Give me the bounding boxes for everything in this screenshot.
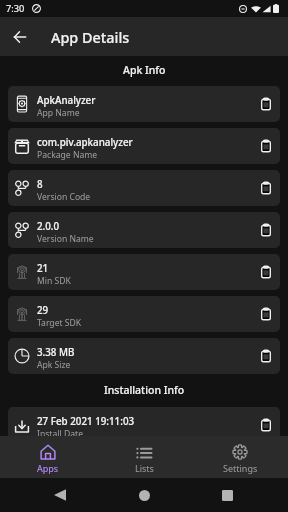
- staticText: 8: [37, 178, 43, 191]
- button[interactable]: Recents: [210, 478, 244, 512]
- staticText: Install Date: [37, 428, 83, 440]
- staticText: App Details: [51, 28, 130, 48]
- staticText: Version Code: [37, 191, 91, 203]
- button[interactable]: 29: [8, 296, 280, 332]
- staticText: Apk Info: [123, 63, 166, 77]
- button[interactable]: 8: [8, 170, 280, 206]
- staticText: com.piv.apkanalyzer: [37, 136, 133, 149]
- button[interactable]: 21: [8, 254, 280, 290]
- staticText: Lists: [135, 462, 154, 474]
- staticText: ApkAnalyzer: [37, 94, 96, 107]
- staticText: 29: [37, 304, 49, 317]
- button[interactable]: Home: [127, 478, 161, 512]
- staticText: 3.38 MB: [37, 346, 75, 359]
- button[interactable]: Copy: [254, 176, 278, 200]
- staticText: 27 Feb 2021 19:11:03: [37, 415, 135, 428]
- button[interactable]: 3.38 MB: [8, 338, 280, 374]
- button[interactable]: ApkAnalyzer: [8, 86, 280, 122]
- button[interactable]: Settings: [192, 436, 288, 478]
- staticText: Apk Size: [37, 359, 71, 371]
- staticText: App Name: [37, 107, 80, 119]
- button[interactable]: Copy: [254, 413, 278, 437]
- button[interactable]: 2.0.0: [8, 212, 280, 248]
- staticText: Version Name: [37, 233, 94, 245]
- button[interactable]: Copy: [254, 92, 278, 116]
- staticText: 21: [37, 262, 49, 275]
- staticText: 7:30: [6, 2, 25, 15]
- button[interactable]: com.piv.apkanalyzer: [8, 128, 280, 164]
- button[interactable]: Back: [8, 25, 32, 49]
- button[interactable]: Copy: [254, 302, 278, 326]
- staticText: Apps: [37, 462, 59, 474]
- staticText: Settings: [223, 462, 258, 474]
- staticText: Package Name: [37, 149, 98, 161]
- staticText: Target SDK: [37, 317, 82, 329]
- staticText: Installation Info: [104, 383, 185, 397]
- button[interactable]: Copy: [254, 344, 278, 368]
- button[interactable]: Apps: [0, 436, 96, 478]
- button[interactable]: Copy: [254, 134, 278, 158]
- button[interactable]: Back: [43, 478, 77, 512]
- button[interactable]: Copy: [254, 260, 278, 284]
- staticText: Min SDK: [37, 275, 71, 287]
- staticText: 2.0.0: [37, 220, 60, 233]
- button[interactable]: Copy: [254, 218, 278, 242]
- button[interactable]: 27 Feb 2021 19:11:03: [8, 407, 280, 443]
- button[interactable]: Lists: [96, 436, 192, 478]
